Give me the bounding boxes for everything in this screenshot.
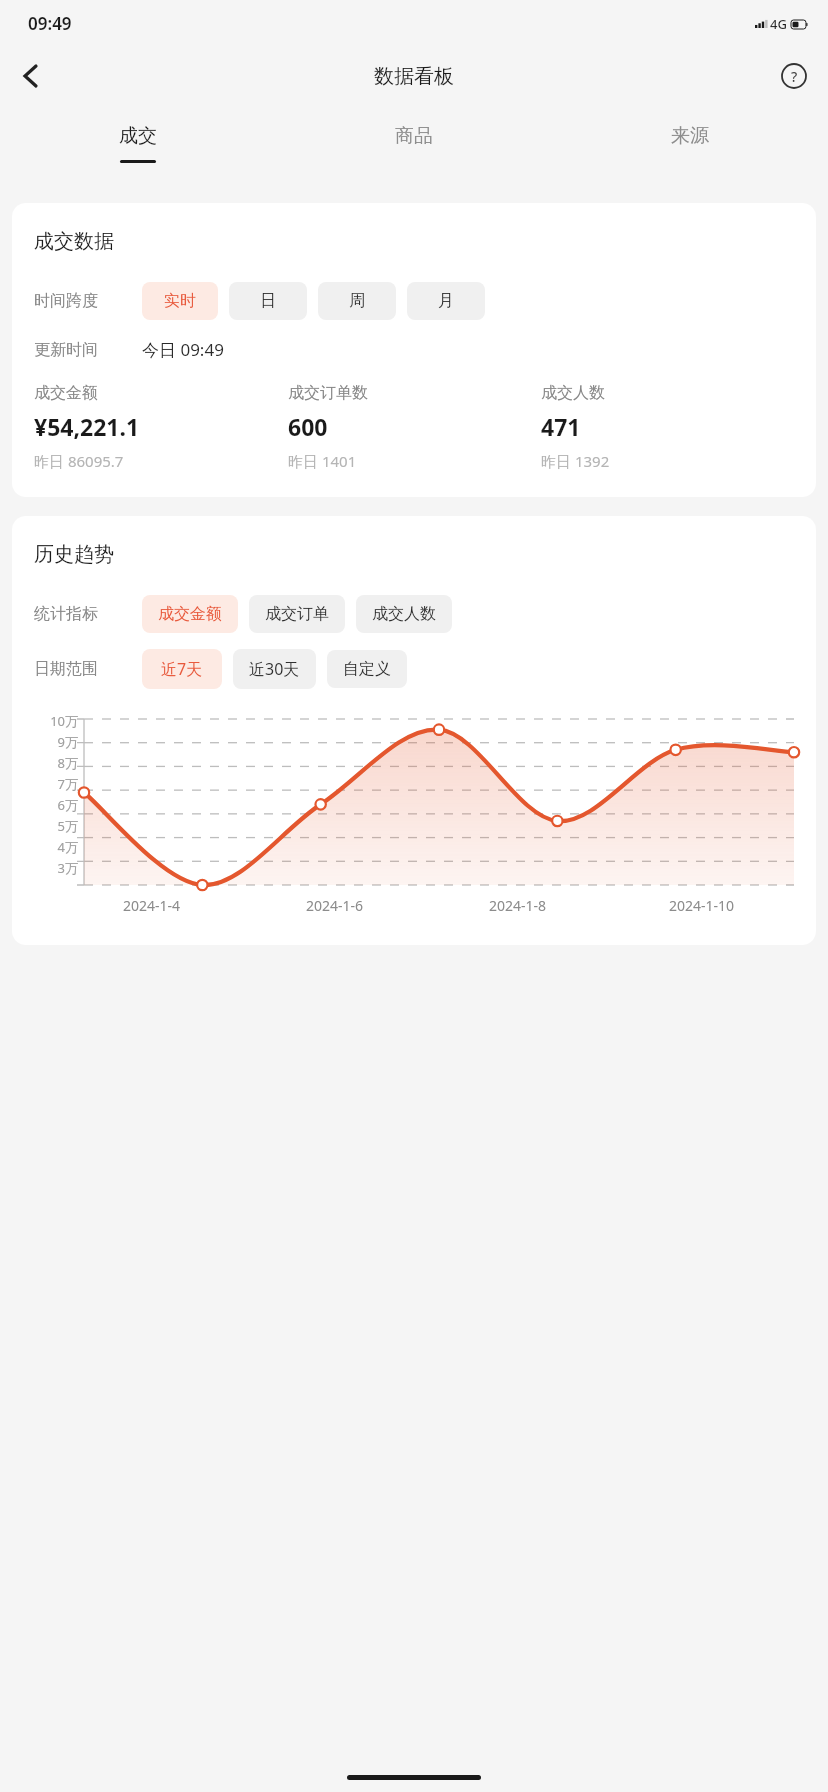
staticText: 自定义	[343, 659, 391, 679]
staticText: 昨日 1392	[541, 451, 610, 471]
staticText: 09:49	[28, 12, 72, 35]
staticText: 日	[260, 291, 276, 311]
button[interactable]: 成交人数	[356, 595, 452, 633]
staticText: 成交订单数	[288, 383, 368, 403]
button[interactable]: 商品	[276, 105, 552, 181]
staticText: 成交金额	[34, 383, 98, 403]
staticText: 9万	[34, 733, 78, 751]
staticText: 2024-1-8	[489, 896, 547, 915]
staticText: 实时	[164, 291, 196, 311]
staticText: 10万	[34, 712, 78, 730]
button[interactable]: 自定义	[327, 650, 407, 688]
staticText: 日期范围	[34, 659, 142, 679]
button[interactable]: 近7天	[142, 649, 222, 689]
staticText: 周	[349, 291, 365, 311]
button[interactable]: 实时	[142, 282, 218, 320]
button[interactable]: 来源	[552, 105, 828, 181]
staticText: 近7天	[161, 658, 203, 680]
staticText: 7万	[34, 775, 78, 793]
staticText: 8万	[34, 754, 78, 772]
staticText: 成交人数	[541, 383, 605, 403]
button[interactable]: 周	[318, 282, 396, 320]
button[interactable]: 日	[229, 282, 307, 320]
staticText: 来源	[671, 124, 709, 148]
staticText: 5万	[34, 817, 78, 835]
staticText: 月	[438, 291, 454, 311]
staticText: 昨日 86095.7	[34, 451, 124, 471]
staticText: 2024-1-6	[306, 896, 364, 915]
button[interactable]: Help	[770, 52, 818, 100]
button[interactable]: Back	[6, 52, 54, 100]
staticText: 成交	[119, 124, 157, 148]
staticText: 4G	[770, 15, 787, 33]
staticText: 成交人数	[372, 604, 436, 624]
staticText: 6万	[34, 796, 78, 814]
staticText: 昨日 1401	[288, 451, 357, 471]
staticText: 成交订单	[265, 604, 329, 624]
staticText: 历史趋势	[34, 542, 114, 567]
staticText: 今日 09:49	[142, 338, 224, 361]
staticText: 2024-1-4	[123, 896, 181, 915]
button[interactable]: 成交金额	[142, 595, 238, 633]
staticText: 近30天	[249, 658, 300, 680]
staticText: 数据看板	[374, 64, 454, 89]
staticText: 4万	[34, 838, 78, 856]
staticText: 统计指标	[34, 604, 142, 624]
staticText: 2024-1-10	[669, 896, 735, 915]
staticText: 时间跨度	[34, 291, 142, 311]
staticText: 600	[288, 411, 328, 442]
button[interactable]: 成交订单	[249, 595, 345, 633]
button[interactable]: 月	[407, 282, 485, 320]
staticText: 成交金额	[158, 604, 222, 624]
staticText: ?	[791, 67, 798, 86]
staticText: 商品	[395, 124, 433, 148]
staticText: 更新时间	[34, 340, 142, 360]
button[interactable]: 成交	[0, 105, 276, 181]
staticText: ¥54,221.1	[34, 411, 140, 442]
staticText: 成交数据	[34, 229, 114, 254]
button[interactable]: 近30天	[233, 649, 316, 689]
staticText: 3万	[34, 859, 78, 877]
staticText: 471	[541, 411, 581, 442]
